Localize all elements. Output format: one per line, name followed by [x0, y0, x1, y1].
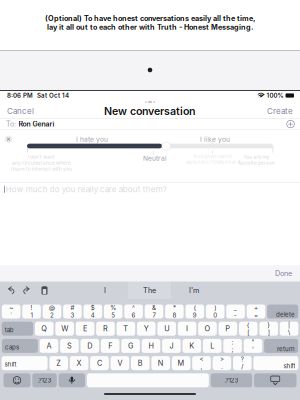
- button[interactable]: K: [182, 339, 201, 353]
- button[interactable]: Redo: [19, 282, 36, 299]
- staticText: ?: [241, 356, 244, 363]
- button[interactable]: M: [172, 356, 190, 370]
- button[interactable]: C: [90, 356, 109, 370]
- button[interactable]: :: [223, 339, 242, 353]
- button[interactable]: ?: [233, 356, 252, 370]
- button[interactable]: Paste: [36, 282, 53, 299]
- button[interactable]: I: [178, 322, 196, 336]
- button[interactable]: ": [244, 339, 262, 353]
- staticText: K: [189, 341, 194, 350]
- button[interactable]: ^: [124, 304, 143, 318]
- button[interactable]: Dictate: [59, 373, 85, 387]
- staticText: 6: [132, 311, 136, 319]
- staticText: favorite person: [238, 160, 275, 166]
- staticText: H: [148, 341, 153, 350]
- button[interactable]: delete: [267, 304, 298, 318]
- button[interactable]: >: [213, 356, 231, 370]
- staticText: 3: [70, 311, 74, 319]
- button[interactable]: B: [131, 356, 150, 370]
- staticText: S: [67, 341, 72, 350]
- staticText: *: [173, 304, 176, 311]
- button[interactable]: F: [101, 339, 119, 353]
- button[interactable]: Add contact: [285, 119, 296, 130]
- button[interactable]: W: [55, 322, 74, 336]
- button[interactable]: shift: [253, 356, 298, 370]
- button[interactable]: V: [111, 356, 129, 370]
- button[interactable]: X: [70, 356, 88, 370]
- button[interactable]: *: [165, 304, 184, 318]
- button[interactable]: O: [198, 322, 217, 336]
- button[interactable]: Create: [260, 103, 300, 119]
- button[interactable]: ~: [2, 304, 20, 318]
- button[interactable]: Hide keyboard: [254, 373, 296, 387]
- staticText: shift: [283, 362, 295, 370]
- button[interactable]: Z: [49, 356, 68, 370]
- button[interactable]: R: [96, 322, 115, 336]
- button[interactable]: T: [117, 322, 135, 336]
- button[interactable]: J: [162, 339, 181, 353]
- button[interactable]: tab: [2, 322, 33, 336]
- staticText: 1: [31, 311, 33, 319]
- staticText: D: [87, 341, 92, 350]
- button[interactable]: &: [145, 304, 163, 318]
- button[interactable]: Remove topic: [2, 133, 14, 145]
- button[interactable]: P: [219, 322, 237, 336]
- staticText: The: [143, 286, 156, 295]
- staticText: lay it all out to each other with Truth …: [47, 23, 253, 32]
- button[interactable]: ): [206, 304, 224, 318]
- button[interactable]: #: [63, 304, 82, 318]
- button[interactable]: I: [83, 282, 127, 299]
- button[interactable]: @: [43, 304, 61, 318]
- staticText: +: [254, 304, 258, 311]
- button[interactable]: !: [22, 304, 41, 318]
- button[interactable]: S: [60, 339, 79, 353]
- staticText: I don't want: [28, 154, 55, 160]
- button[interactable]: {: [239, 322, 258, 336]
- button[interactable]: E: [76, 322, 94, 336]
- staticText: 4: [91, 311, 95, 319]
- staticText: How much do you really care about them?: [6, 184, 167, 194]
- button[interactable]: L: [203, 339, 221, 353]
- button[interactable]: [87, 373, 209, 387]
- button[interactable]: I'm: [172, 282, 216, 299]
- staticText: I have to interact with you: [11, 166, 72, 172]
- staticText: 5: [111, 311, 115, 319]
- button[interactable]: %: [104, 304, 122, 318]
- button[interactable]: shift: [2, 356, 48, 370]
- button[interactable]: Done: [269, 267, 298, 280]
- button[interactable]: N: [151, 356, 170, 370]
- button[interactable]: $: [83, 304, 102, 318]
- staticText: #: [70, 304, 74, 311]
- staticText: F: [108, 341, 112, 350]
- button[interactable]: Emoji: [3, 373, 30, 387]
- button[interactable]: Cancel: [0, 103, 41, 119]
- button[interactable]: The: [127, 282, 171, 299]
- staticText: .?123: [224, 377, 238, 384]
- button[interactable]: |: [280, 322, 298, 336]
- button[interactable]: D: [80, 339, 99, 353]
- button[interactable]: Y: [137, 322, 156, 336]
- staticText: .: [221, 363, 223, 370]
- button[interactable]: H: [142, 339, 160, 353]
- staticText: I: [104, 286, 106, 295]
- button[interactable]: _: [226, 304, 245, 318]
- button[interactable]: (: [185, 304, 204, 318]
- staticText: say but don't totally mean it: [186, 160, 240, 165]
- button[interactable]: }: [259, 322, 278, 336]
- button[interactable]: return: [264, 339, 298, 353]
- staticText: _: [234, 304, 237, 311]
- button[interactable]: .?123: [211, 373, 252, 387]
- button[interactable]: <: [192, 356, 211, 370]
- button[interactable]: G: [121, 339, 140, 353]
- button[interactable]: caps: [2, 339, 38, 353]
- staticText: ]: [268, 329, 270, 336]
- staticText: O: [204, 324, 210, 333]
- button[interactable]: U: [157, 322, 176, 336]
- button[interactable]: Q: [35, 322, 54, 336]
- staticText: Ron Genari: [18, 120, 54, 128]
- button[interactable]: +: [247, 304, 265, 318]
- button[interactable]: Undo: [2, 282, 19, 299]
- button[interactable]: A: [40, 339, 58, 353]
- button[interactable]: .?123: [32, 373, 57, 387]
- staticText: V: [117, 359, 122, 368]
